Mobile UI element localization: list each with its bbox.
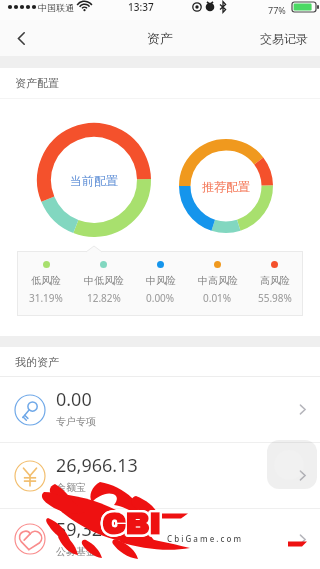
staticText: CBI — [100, 507, 159, 540]
staticText: 当前配置 — [70, 173, 118, 188]
button[interactable]: 交易记录 — [250, 20, 320, 56]
staticText: CBI — [104, 509, 163, 542]
staticText: CBI — [103, 506, 162, 539]
staticText: 专户专项 — [56, 415, 96, 428]
staticText: 55.98% — [258, 291, 292, 305]
button[interactable]: Back — [0, 20, 42, 56]
staticText: 低风险 — [31, 274, 61, 287]
staticText: CBI — [103, 510, 162, 543]
staticText: CBI — [102, 506, 161, 539]
staticText: 中国联通 — [38, 2, 74, 13]
staticText: 我的资产 — [15, 355, 59, 369]
staticText: 中高风险 — [198, 274, 238, 287]
staticText: CBI — [104, 507, 163, 540]
staticText: 中低风险 — [84, 274, 124, 287]
staticText: 31.19% — [29, 291, 63, 305]
staticText: 高风险 — [260, 274, 290, 287]
staticText: CBI — [103, 508, 162, 541]
staticText: CBI — [100, 509, 159, 542]
button[interactable]: 59,327.75 — [0, 509, 320, 569]
staticText: 资产配置 — [15, 76, 59, 90]
staticText: 余额宝 — [56, 481, 86, 494]
staticText: 0.00 — [56, 387, 92, 412]
staticText: CBI — [101, 508, 160, 541]
button[interactable]: 26,966.13 — [0, 443, 320, 508]
staticText: CBI — [103, 509, 162, 542]
staticText: 13:37 — [128, 0, 154, 14]
staticText: C b i G a m e . c o m — [167, 533, 242, 544]
staticText: 交易记录 — [260, 31, 308, 46]
staticText: 中风险 — [146, 274, 176, 287]
staticText: 0.01% — [203, 291, 232, 305]
staticText: CBI — [103, 507, 162, 540]
staticText: 26,966.13 — [56, 453, 138, 478]
staticText: CBI — [101, 510, 160, 543]
staticText: CBI — [102, 508, 161, 541]
staticText: CBI — [104, 508, 163, 541]
staticText: CBI — [102, 510, 161, 543]
staticText: 推荐配置 — [202, 179, 250, 194]
staticText: 公募基金 — [56, 545, 96, 558]
staticText: 59,327.75 — [56, 517, 138, 542]
staticText: 0.00% — [146, 291, 175, 305]
staticText: CBI — [101, 509, 160, 542]
button[interactable]: 0.00 — [0, 377, 320, 442]
staticText: CBI — [101, 506, 160, 539]
staticText: CBI — [101, 507, 160, 540]
staticText: CBI — [100, 508, 159, 541]
staticText: CBI — [102, 509, 161, 542]
staticText: 资产 — [147, 30, 173, 46]
staticText: 77% — [268, 4, 286, 16]
staticText: CBI — [102, 507, 161, 540]
staticText: 12.82% — [87, 291, 121, 305]
